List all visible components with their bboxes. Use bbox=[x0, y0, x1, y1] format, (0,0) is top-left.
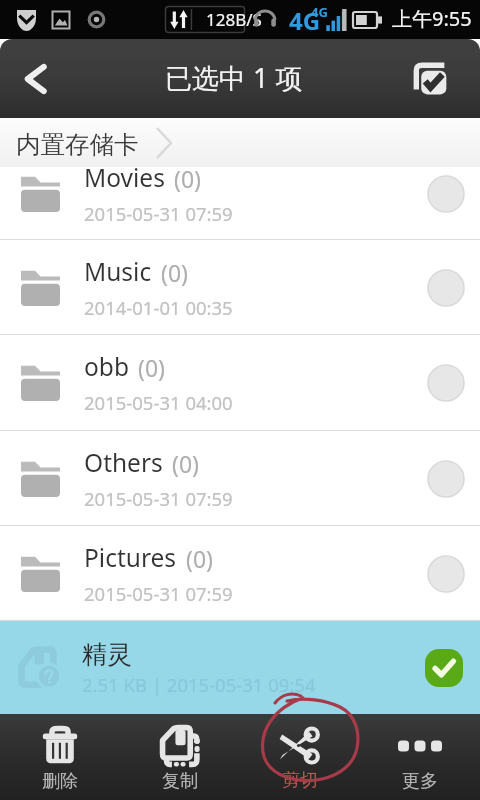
button[interactable]: Movies bbox=[0, 167, 480, 240]
staticText: Pictures bbox=[84, 541, 177, 574]
button[interactable]: Select item bbox=[412, 431, 480, 526]
staticText: 更多 bbox=[402, 770, 438, 793]
button[interactable]: Music bbox=[0, 240, 480, 335]
button[interactable]: Select item bbox=[412, 526, 480, 621]
staticText: 2015-05-31 07:59 bbox=[84, 581, 233, 606]
button[interactable]: Delete bbox=[0, 714, 120, 800]
staticText: 2015-05-31 07:59 bbox=[84, 486, 233, 511]
staticText: 复制 bbox=[162, 770, 198, 793]
button[interactable]: Pictures bbox=[0, 526, 480, 621]
button[interactable]: Others bbox=[0, 431, 480, 526]
staticText: obb bbox=[84, 350, 129, 383]
button[interactable]: Select item bbox=[412, 335, 480, 430]
button[interactable]: Copy bbox=[120, 714, 240, 800]
staticText: 2015-05-31 04:00 bbox=[84, 390, 233, 415]
button[interactable]: Select item bbox=[412, 240, 480, 335]
staticText: 精灵 bbox=[82, 639, 132, 670]
button[interactable]: Back bbox=[0, 39, 72, 118]
staticText: 4G bbox=[289, 4, 321, 37]
staticText: 2014-01-01 00:35 bbox=[84, 295, 233, 320]
staticText: 删除 bbox=[42, 770, 78, 793]
staticText: (0) bbox=[138, 352, 165, 383]
staticText: 4G bbox=[311, 3, 328, 21]
staticText: (0) bbox=[161, 257, 188, 288]
staticText: 上午9:55 bbox=[392, 5, 472, 32]
staticText: 已选中 1 项 bbox=[165, 59, 303, 96]
button[interactable]: obb bbox=[0, 335, 480, 431]
button[interactable]: Selected bbox=[408, 621, 480, 714]
button[interactable]: 内置存储卡 bbox=[16, 123, 139, 162]
staticText: 128B/S bbox=[206, 8, 262, 31]
staticText: (0) bbox=[186, 543, 213, 574]
staticText: 2015-05-31 07:59 bbox=[84, 201, 233, 226]
staticText: Others bbox=[84, 446, 163, 479]
button[interactable]: Select all bbox=[388, 39, 472, 118]
staticText: Movies bbox=[84, 167, 165, 194]
staticText: (0) bbox=[172, 448, 199, 479]
staticText: Music bbox=[84, 255, 152, 288]
button[interactable]: More bbox=[360, 714, 480, 800]
staticText: 内置存储卡 bbox=[16, 129, 139, 160]
staticText: (0) bbox=[174, 167, 201, 194]
button[interactable]: Select item bbox=[412, 167, 480, 230]
button[interactable]: 精灵 bbox=[0, 621, 480, 714]
staticText: 剪切 bbox=[282, 769, 318, 792]
staticText: 2.51 KB | 2015-05-31 09:54 bbox=[82, 672, 316, 697]
button[interactable]: Cut bbox=[240, 714, 360, 800]
